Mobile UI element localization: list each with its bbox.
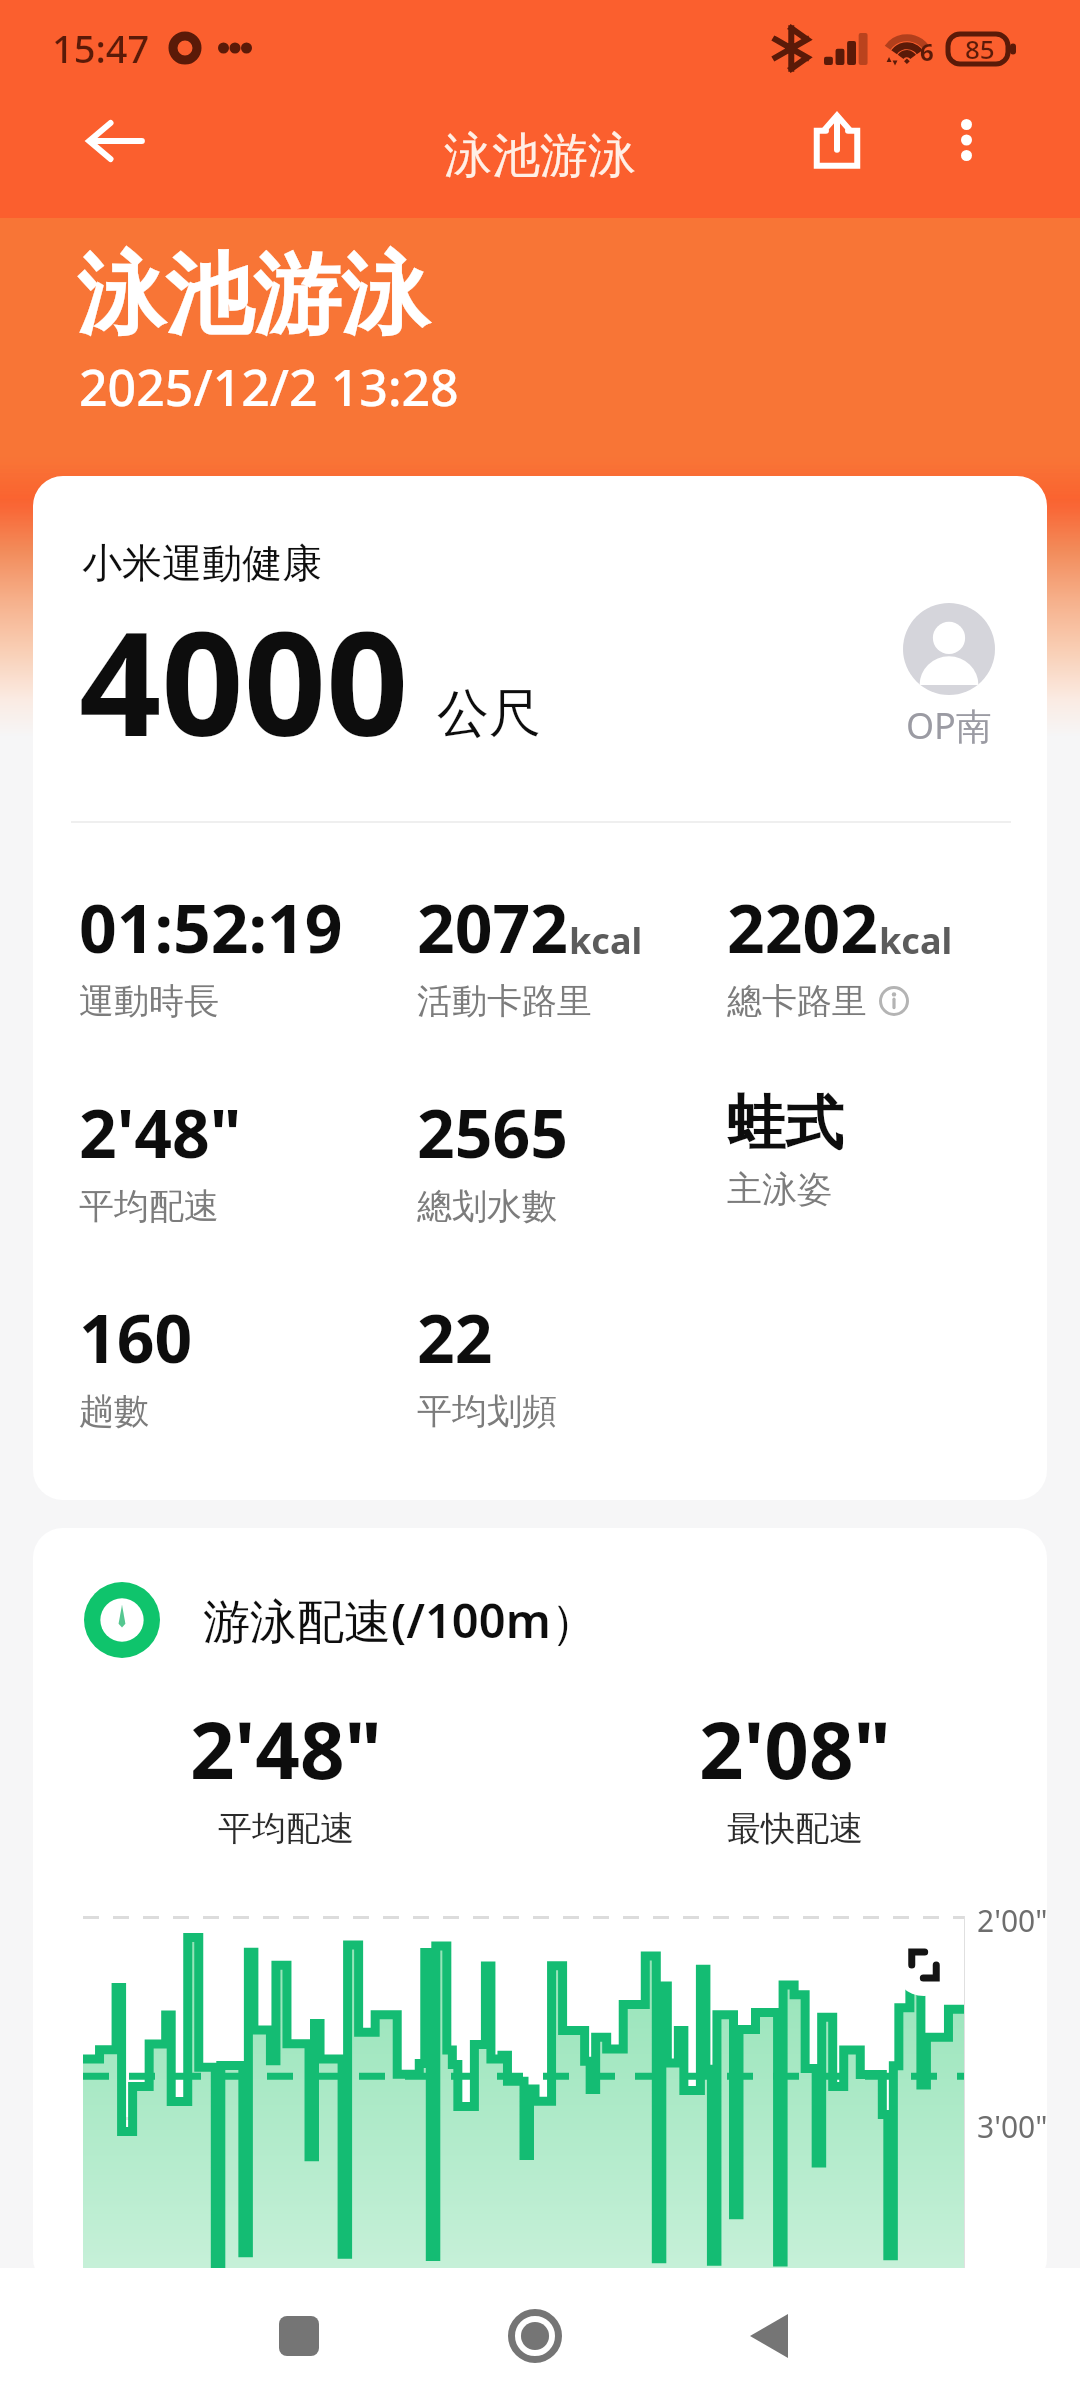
- staticText: 主泳姿: [727, 1167, 832, 1211]
- staticText: 2'08": [699, 1696, 891, 1802]
- staticText: 趟數: [79, 1389, 149, 1433]
- staticText: 3'00": [977, 2106, 1047, 2147]
- button[interactable]: Back: [70, 96, 160, 186]
- staticText: kcal: [569, 916, 643, 965]
- button[interactable]: Recent apps: [244, 2281, 354, 2391]
- staticText: 2'48": [190, 1696, 382, 1802]
- staticText: 游泳配速(/100m）: [203, 1588, 598, 1652]
- staticText: 活動卡路里: [417, 979, 592, 1023]
- staticText: 2202: [727, 882, 879, 972]
- staticText: 2'48": [79, 1087, 242, 1177]
- staticText: 4000: [79, 582, 409, 778]
- staticText: OP南: [906, 701, 992, 750]
- staticText: 總划水數: [417, 1184, 557, 1228]
- staticText: 15:47: [52, 22, 150, 74]
- staticText: 公尺: [437, 681, 541, 747]
- staticText: 2072: [417, 882, 569, 972]
- staticText: 6: [920, 35, 934, 68]
- staticText: 泳池游泳: [444, 126, 636, 186]
- button[interactable]: Expand chart: [893, 1934, 955, 1996]
- staticText: 蛙式: [727, 1087, 843, 1160]
- staticText: 160: [79, 1292, 193, 1382]
- button[interactable]: More options: [922, 96, 1010, 184]
- staticText: 運動時長: [79, 979, 219, 1023]
- staticText: 85: [965, 31, 995, 66]
- button[interactable]: Share: [792, 96, 882, 186]
- staticText: 01:52:19: [79, 882, 343, 972]
- staticText: 最快配速: [727, 1807, 863, 1850]
- staticText: 平均划頻: [417, 1389, 557, 1433]
- staticText: 平均配速: [218, 1807, 354, 1850]
- staticText: 22: [417, 1292, 493, 1382]
- button[interactable]: Home: [480, 2281, 590, 2391]
- button[interactable]: Back: [714, 2281, 824, 2391]
- staticText: 2565: [417, 1087, 569, 1177]
- staticText: 泳池游泳: [77, 240, 429, 351]
- staticText: 2025/12/2 13:28: [79, 353, 459, 421]
- staticText: 平均配速: [79, 1184, 219, 1228]
- staticText: 2'00": [977, 1900, 1047, 1941]
- staticText: kcal: [879, 916, 953, 965]
- staticText: 小米運動健康: [82, 538, 322, 588]
- staticText: 總卡路里: [727, 979, 867, 1023]
